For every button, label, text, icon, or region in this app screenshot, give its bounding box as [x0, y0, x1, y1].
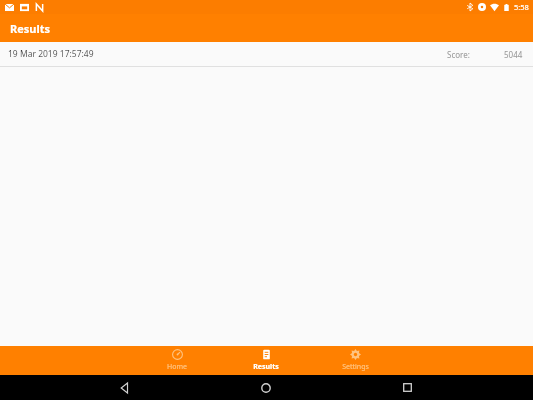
staticText: 19 Mar 2019 17:57:49	[8, 48, 94, 60]
staticText: Score:	[447, 49, 470, 60]
button[interactable]: 19 Mar 2019 17:57:49	[0, 42, 533, 67]
button[interactable]: Results	[238, 347, 294, 374]
button[interactable]: Settings	[327, 347, 383, 374]
staticText: 5:58	[514, 2, 529, 12]
button[interactable]: Home	[251, 375, 281, 400]
button[interactable]: Back	[110, 375, 140, 400]
button[interactable]: Home	[149, 347, 205, 374]
staticText: Results	[253, 362, 279, 372]
staticText: Results	[10, 21, 51, 36]
staticText: 5044	[504, 49, 523, 60]
button[interactable]: Recent apps	[392, 375, 422, 400]
staticText: Home	[167, 362, 187, 372]
staticText: Settings	[342, 362, 369, 372]
